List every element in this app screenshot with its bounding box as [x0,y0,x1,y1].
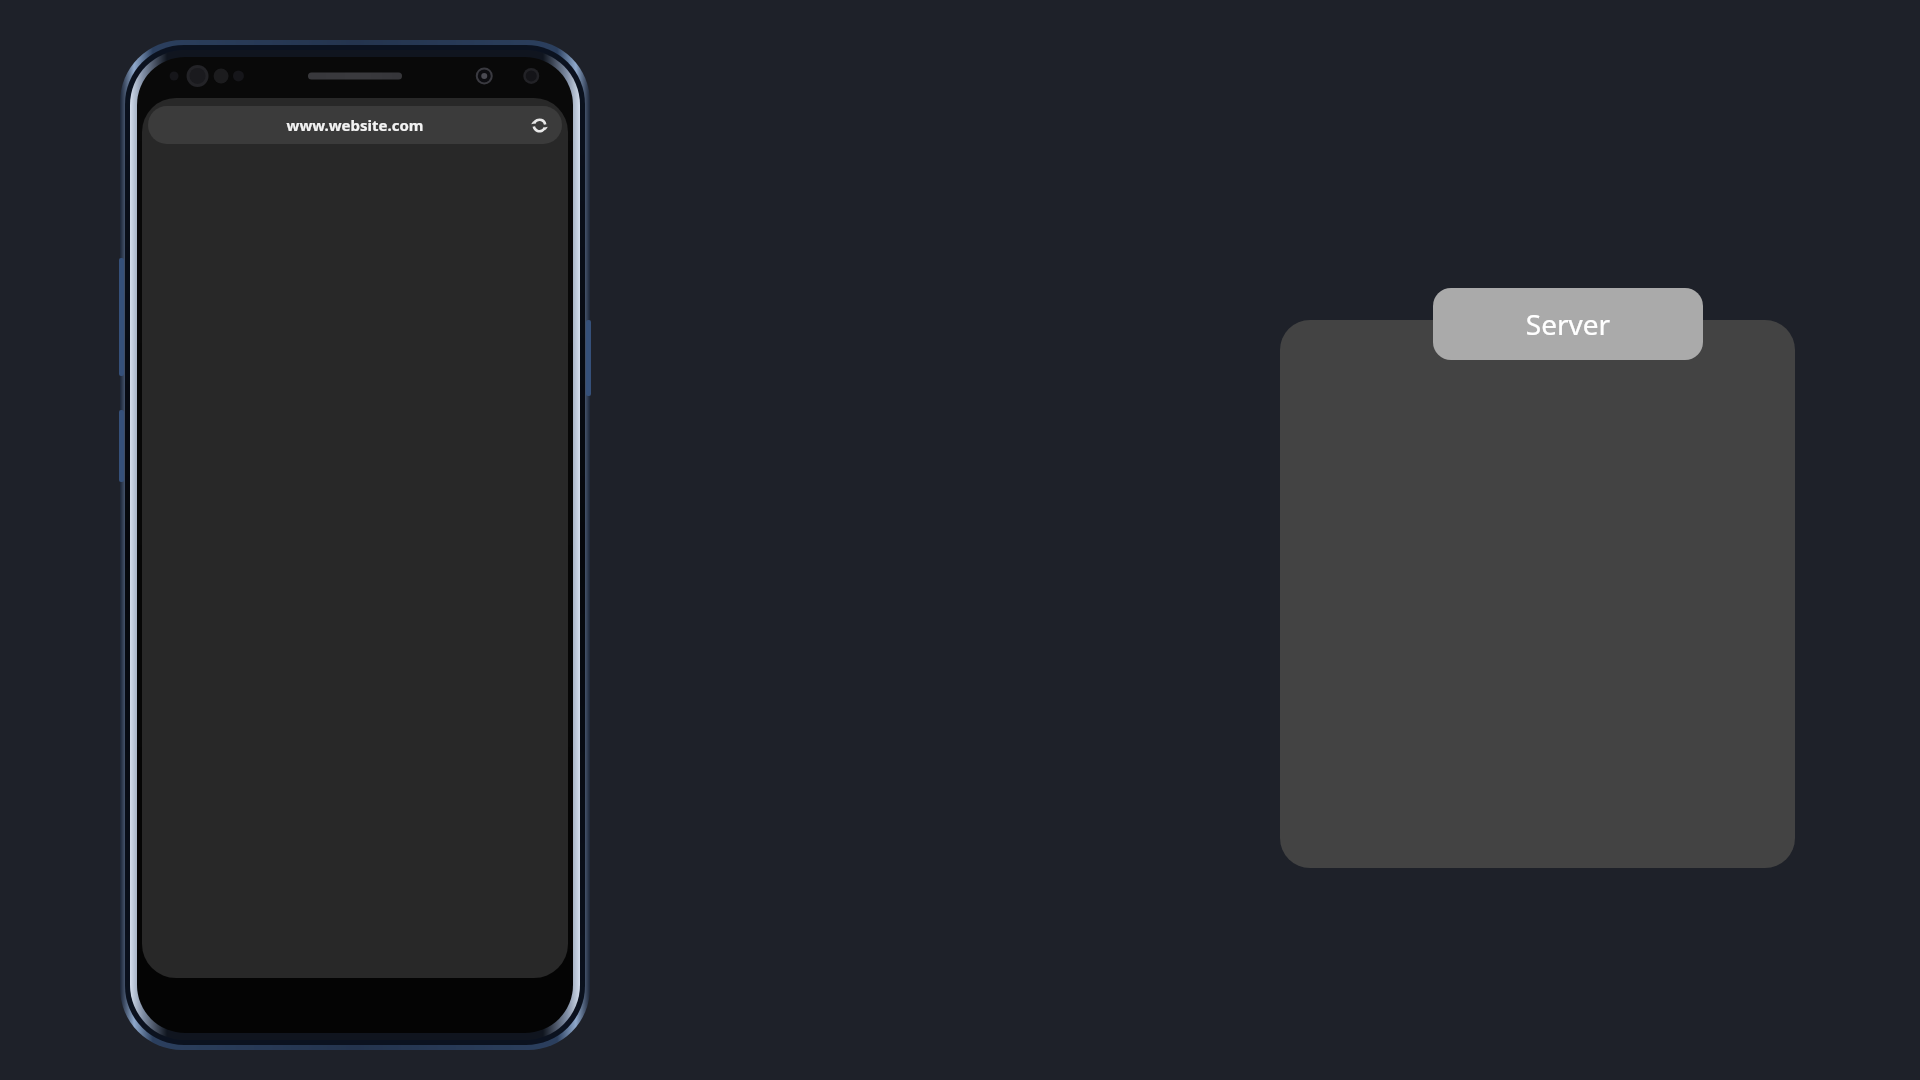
button[interactable]: Server [1433,288,1703,360]
button[interactable] [1280,320,1795,868]
button[interactable]: Reload page [526,112,552,138]
other: Volume buttons [119,258,124,376]
button[interactable]: www.website.com [148,106,562,144]
other: Power button [586,320,591,396]
staticText: Server [1433,305,1703,343]
other: Bixby button [119,410,124,482]
staticText: www.website.com [148,115,562,135]
